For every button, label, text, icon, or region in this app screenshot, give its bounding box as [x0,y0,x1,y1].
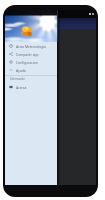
staticText: Compartir app [16,52,39,56]
button[interactable]: Configuracion [5,58,57,66]
staticText: Configuracion [16,60,38,64]
staticText: Aviso Meteorologia [16,44,46,48]
staticText: Información [10,77,25,81]
staticText: Ayuda [16,68,27,72]
button[interactable]: Acerca [5,83,57,91]
button[interactable]: Aviso Meteorologia [5,42,57,50]
staticText: Acerca [16,85,27,89]
button[interactable]: Ayuda [5,66,57,74]
button[interactable]: Compartir app [5,50,57,58]
